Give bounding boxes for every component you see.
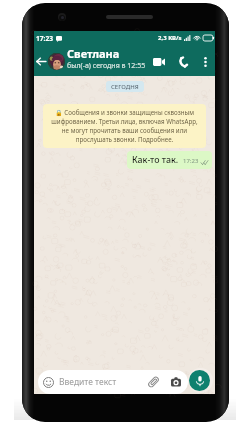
- button[interactable]: Camera: [171, 377, 181, 387]
- button[interactable]: Как-то так.: [127, 151, 212, 169]
- staticText: Как-то так.: [132, 154, 179, 166]
- staticText: Введите текст: [59, 376, 117, 388]
- staticText: 17:23: [36, 34, 53, 43]
- button[interactable]: Video call: [148, 52, 170, 72]
- staticText: 2,3 KB/s: [158, 34, 182, 42]
- button[interactable]: Attach: [148, 376, 159, 388]
- button[interactable]: More options: [197, 52, 213, 72]
- button[interactable]: Введите текст: [38, 370, 188, 394]
- button[interactable]: Voice message: [189, 370, 210, 391]
- staticText: был(-а) сегодня в 12:55: [67, 61, 146, 71]
- staticText: Светлана: [67, 46, 120, 61]
- staticText: 17:23: [183, 157, 199, 165]
- button[interactable]: Call: [174, 52, 193, 72]
- staticText: 🔒 Сообщения и звонки защищены сквозным ш…: [48, 108, 201, 144]
- staticText: СЕГОДНЯ: [111, 83, 139, 91]
- button[interactable]: Back: [34, 47, 48, 76]
